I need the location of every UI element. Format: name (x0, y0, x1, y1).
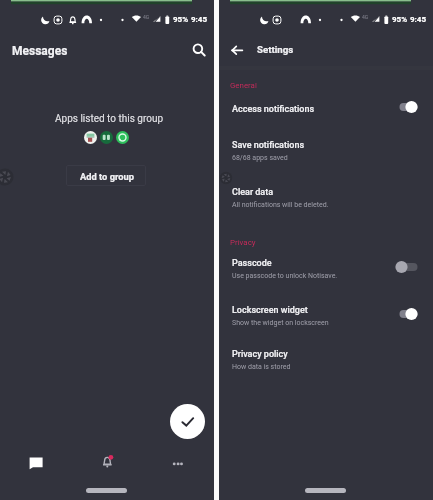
staticText: 68/68 apps saved (232, 154, 288, 162)
staticText: 95% (392, 15, 408, 24)
staticText: 4G (362, 14, 369, 20)
button[interactable]: Clear data (219, 177, 433, 213)
staticText: Messages (12, 44, 68, 58)
staticText: Save notifications (232, 140, 305, 151)
button[interactable]: Passcode (219, 248, 433, 284)
staticText: All notifications will be deleted. (232, 201, 329, 209)
staticText: How data is stored (232, 363, 291, 371)
staticText: 95% (173, 15, 189, 24)
button[interactable]: Notifications (71, 445, 143, 475)
button[interactable]: More options (143, 445, 214, 475)
button[interactable]: Back (229, 38, 255, 64)
button[interactable]: Messages (0, 445, 71, 475)
button[interactable]: Confirm (170, 404, 205, 439)
button[interactable]: Add to group (66, 165, 146, 186)
button[interactable]: Privacy policy (219, 339, 433, 375)
staticText: Access notifications (232, 104, 315, 115)
staticText: 9:45 (191, 15, 208, 24)
button[interactable]: Save notifications (219, 130, 433, 166)
staticText: General (230, 81, 257, 90)
staticText: Settings (257, 44, 294, 55)
staticText: Apps listed to this group (55, 113, 164, 125)
staticText: Clear data (232, 187, 274, 198)
staticText: Lockscreen widget (232, 305, 308, 316)
staticText: 4G (143, 14, 150, 20)
staticText: Passcode (232, 258, 272, 269)
button[interactable]: Access notifications (219, 94, 433, 124)
staticText: Use passcode to unlock Notisave. (232, 272, 338, 280)
staticText: Privacy policy (232, 349, 288, 360)
button[interactable]: Lockscreen widget (219, 295, 433, 331)
staticText: Privacy (230, 238, 256, 247)
staticText: Add to group (80, 171, 134, 182)
staticText: Show the widget on lockscreen (232, 319, 329, 327)
button[interactable]: Search (186, 37, 210, 61)
staticText: 9:45 (410, 15, 427, 24)
